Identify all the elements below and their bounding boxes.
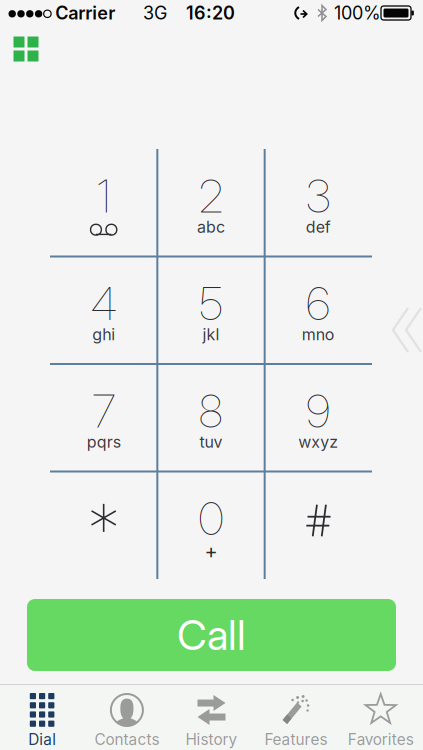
- staticText: 2: [199, 169, 223, 223]
- staticText: tuv: [199, 432, 222, 452]
- button[interactable]: Call: [27, 599, 396, 671]
- staticText: def: [306, 217, 331, 237]
- staticText: wxyz: [298, 432, 338, 452]
- staticText: Carrier: [55, 2, 115, 24]
- button[interactable]: 9: [265, 364, 372, 471]
- staticText: 6: [306, 276, 330, 331]
- button[interactable]: 4: [50, 256, 157, 364]
- staticText: 1: [97, 169, 111, 223]
- staticText: ghi: [92, 325, 115, 344]
- staticText: pqrs: [87, 432, 121, 452]
- staticText: Favorites: [348, 730, 414, 749]
- button[interactable]: History: [169, 684, 254, 750]
- button[interactable]: Pound: [265, 471, 372, 579]
- button[interactable]: 8: [157, 364, 265, 471]
- staticText: Dial: [28, 730, 56, 749]
- staticText: Features: [265, 730, 328, 749]
- staticText: Contacts: [94, 730, 159, 749]
- staticText: 3G: [143, 2, 167, 24]
- button[interactable]: 6: [265, 256, 372, 364]
- staticText: History: [185, 730, 237, 749]
- button[interactable]: Apps: [13, 36, 38, 61]
- staticText: +: [204, 539, 217, 564]
- staticText: mno: [302, 325, 335, 344]
- staticText: 100%: [334, 2, 381, 24]
- button[interactable]: Features: [254, 684, 338, 750]
- staticText: 4: [91, 276, 117, 331]
- button[interactable]: Dial: [0, 684, 85, 750]
- staticText: 7: [92, 384, 115, 438]
- staticText: abc: [197, 217, 225, 237]
- staticText: 5: [199, 276, 222, 331]
- staticText: 8: [199, 384, 223, 438]
- button[interactable]: 1 voicemail: [50, 149, 157, 256]
- button[interactable]: 5: [157, 256, 265, 364]
- button[interactable]: Favorites: [338, 684, 423, 750]
- button[interactable]: 0 plus: [157, 471, 265, 579]
- staticText: Call: [177, 610, 246, 660]
- button[interactable]: 2: [157, 149, 265, 256]
- button[interactable]: Contacts: [85, 684, 169, 750]
- button[interactable]: 7: [50, 364, 157, 471]
- button[interactable]: 3: [265, 149, 372, 256]
- staticText: 9: [306, 384, 330, 438]
- staticText: 3: [306, 169, 330, 223]
- staticText: jkl: [202, 325, 219, 344]
- staticText: 0: [198, 491, 223, 546]
- button[interactable]: Star: [50, 471, 157, 579]
- staticText: 16:20: [186, 2, 235, 24]
